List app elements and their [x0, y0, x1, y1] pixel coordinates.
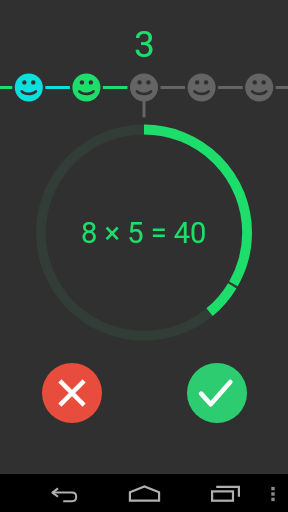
staticText: 8 × 5 = 40	[81, 216, 207, 250]
button[interactable]: Correct	[187, 363, 247, 423]
button[interactable]: Back	[41, 477, 89, 512]
button[interactable]: More options	[258, 475, 288, 512]
button[interactable]: Wrong	[42, 363, 102, 423]
button[interactable]: Home	[120, 474, 168, 512]
button[interactable]: Recent apps	[201, 474, 249, 512]
staticText: 3	[134, 23, 155, 66]
